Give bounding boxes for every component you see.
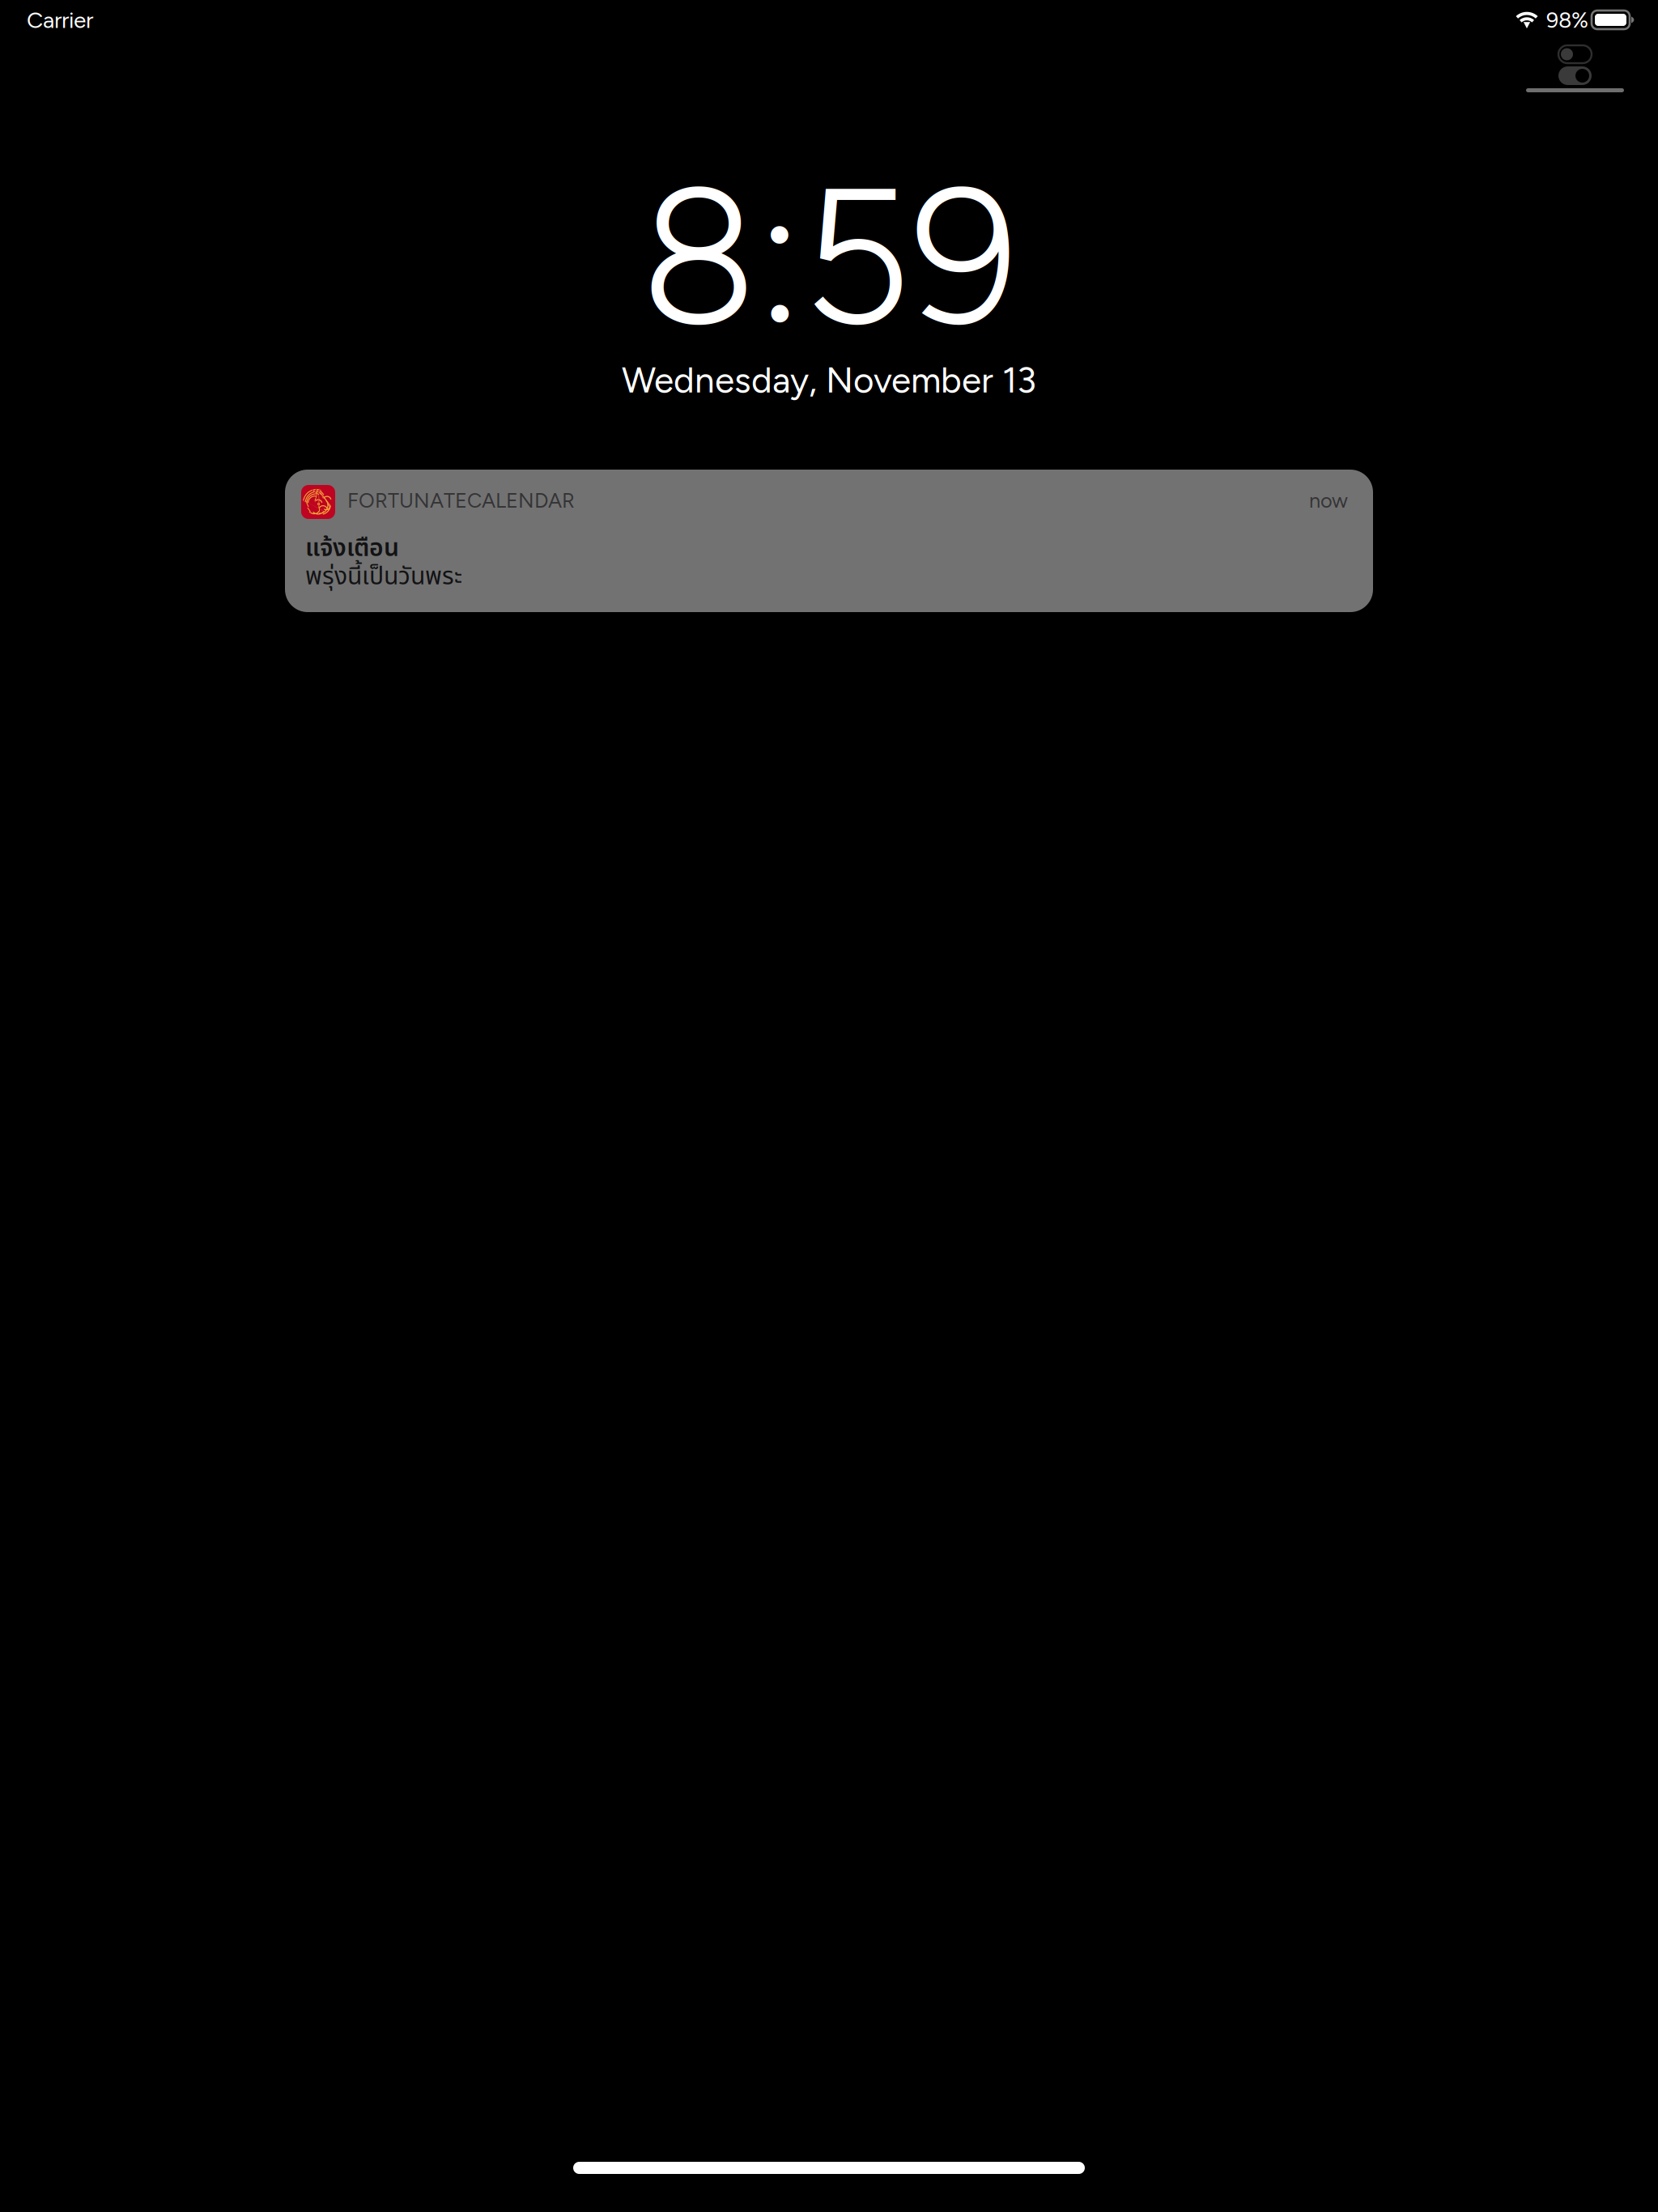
staticText: now (1309, 488, 1348, 513)
button[interactable]: Toggle, on (1558, 66, 1592, 85)
staticText: 98% (1546, 7, 1588, 33)
staticText: Carrier (27, 6, 93, 34)
button[interactable]: Toggle, off (1558, 45, 1592, 63)
staticText: Wednesday, November 13 (622, 359, 1036, 401)
staticText: FORTUNATECALENDAR (347, 488, 575, 513)
button[interactable]: FortunateCalendar notification, now (285, 470, 1373, 612)
staticText: พรุ่งนี้เป็นวันพระ (305, 559, 462, 595)
staticText: 8:59 (640, 141, 1018, 370)
staticText: แจ้งเตือน (305, 530, 399, 567)
